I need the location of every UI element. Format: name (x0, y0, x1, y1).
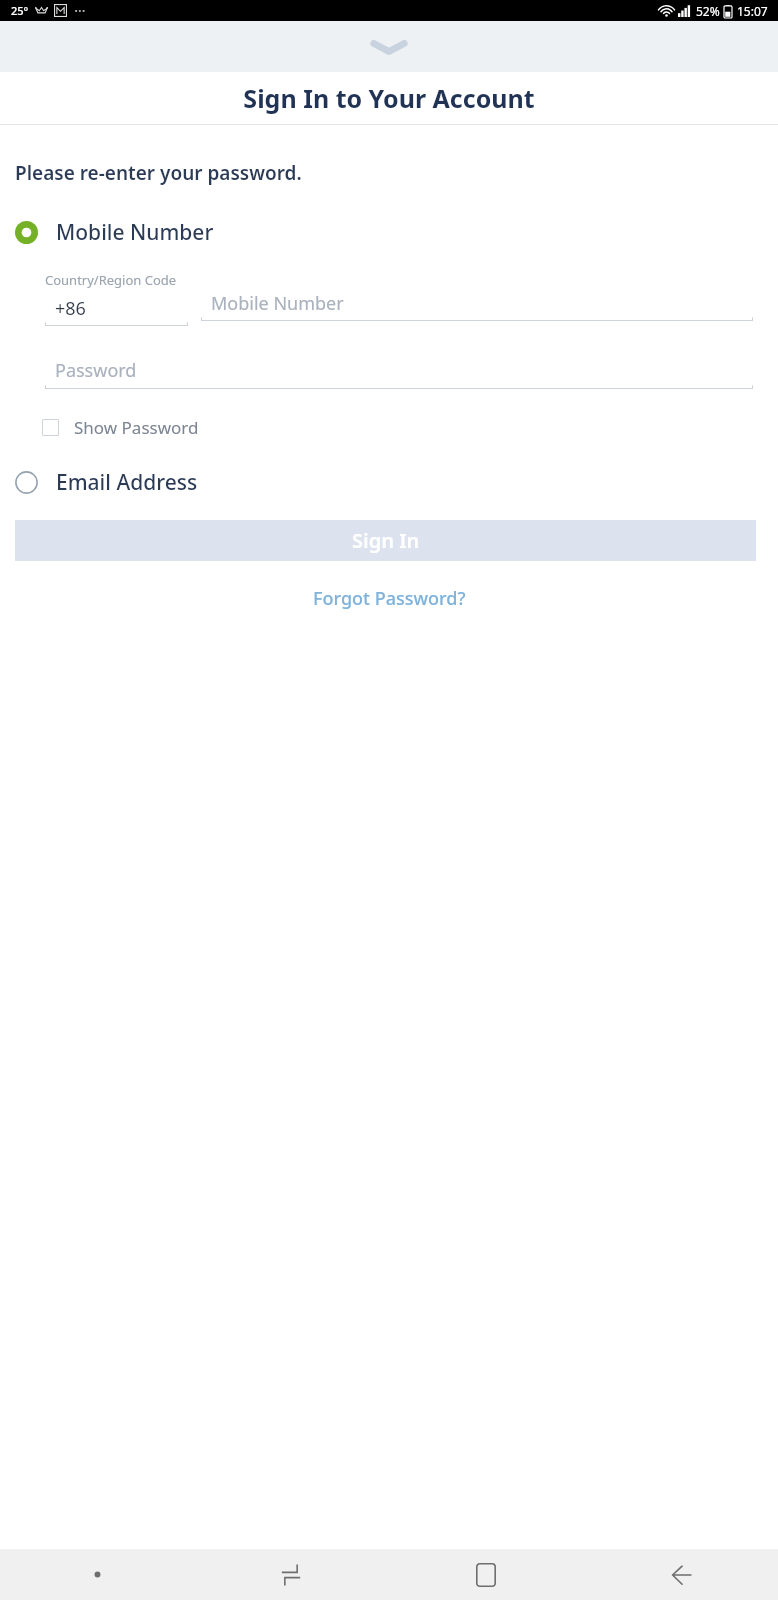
staticText: Forgot Password? (313, 586, 466, 611)
button[interactable]: Forgot Password? (301, 582, 478, 615)
staticText: 52% (696, 3, 720, 19)
staticText: 15:07 (737, 3, 768, 19)
button[interactable]: Country/Region Code (45, 271, 188, 326)
button[interactable]: Show Password (0, 413, 199, 442)
button[interactable]: Email Address (0, 464, 778, 501)
staticText: +86 (55, 296, 86, 321)
button[interactable]: Mobile Number (201, 271, 753, 321)
staticText: Sign In to Your Account (243, 81, 535, 115)
staticText: Sign In (352, 527, 420, 554)
button[interactable]: Mobile Number (0, 214, 778, 251)
staticText: Mobile Number (56, 218, 214, 247)
staticText: Show Password (74, 416, 199, 439)
button[interactable]: Recents (194, 1549, 388, 1600)
staticText: Country/Region Code (45, 271, 177, 289)
button[interactable]: Home (388, 1549, 583, 1600)
staticText: Password (55, 358, 137, 383)
button[interactable]: Sign In (15, 520, 756, 561)
button[interactable]: Password (45, 356, 753, 389)
staticText: 25° (11, 3, 29, 18)
button[interactable]: Back (583, 1549, 778, 1600)
staticText: Please re-enter your password. (15, 160, 302, 186)
staticText: Mobile Number (211, 291, 344, 316)
staticText: Email Address (56, 468, 198, 497)
button[interactable]: Menu indicator (0, 1549, 194, 1600)
